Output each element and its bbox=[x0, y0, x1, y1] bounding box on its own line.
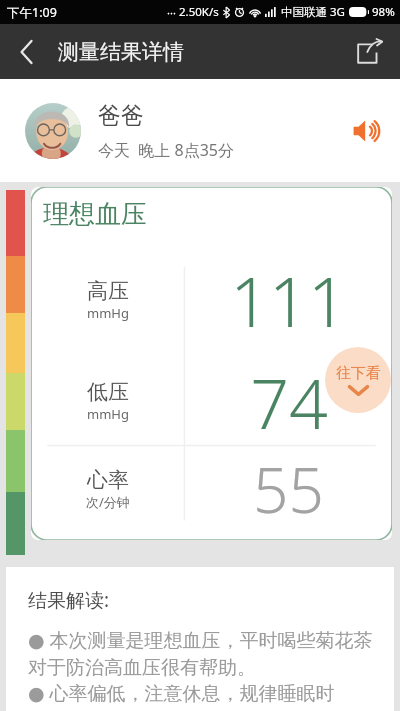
staticText: mmHg bbox=[87, 304, 129, 322]
staticText: 次/分钟 bbox=[86, 493, 130, 511]
staticText: 测量结果详情 bbox=[58, 39, 184, 65]
button[interactable]: 理想血压 bbox=[31, 187, 392, 540]
staticText: 结果解读: bbox=[28, 587, 110, 613]
staticText: 111 bbox=[230, 254, 347, 347]
staticText: ··· bbox=[167, 5, 176, 20]
staticText: 下午1:09 bbox=[7, 4, 57, 21]
staticText: mmHg bbox=[87, 405, 129, 423]
staticText: 中国联通 3G bbox=[281, 4, 345, 20]
staticText: 心率 bbox=[87, 467, 129, 493]
staticText: 往下看 bbox=[336, 364, 381, 383]
staticText: 55 bbox=[253, 447, 324, 531]
button[interactable]: Share bbox=[346, 29, 392, 75]
staticText: 98% bbox=[372, 4, 395, 20]
button[interactable]: Play voice bbox=[344, 108, 390, 154]
staticText: ● 本次测量是理想血压，平时喝些菊花茶对于防治高血压很有帮助。 bbox=[28, 627, 382, 680]
staticText: 2.50K/s bbox=[179, 4, 219, 20]
staticText: ● 心率偏低，注意休息，规律睡眠时 bbox=[28, 680, 335, 706]
button[interactable]: Back bbox=[4, 29, 50, 75]
staticText: 低压 bbox=[87, 379, 129, 405]
button[interactable]: Scroll down for more bbox=[325, 347, 391, 413]
staticText: 今天 晚上 8点35分 bbox=[98, 139, 234, 161]
staticText: 高压 bbox=[87, 278, 129, 304]
staticText: 爸爸 bbox=[98, 101, 144, 130]
staticText: 74 bbox=[250, 356, 328, 446]
staticText: 理想血压 bbox=[43, 198, 147, 231]
